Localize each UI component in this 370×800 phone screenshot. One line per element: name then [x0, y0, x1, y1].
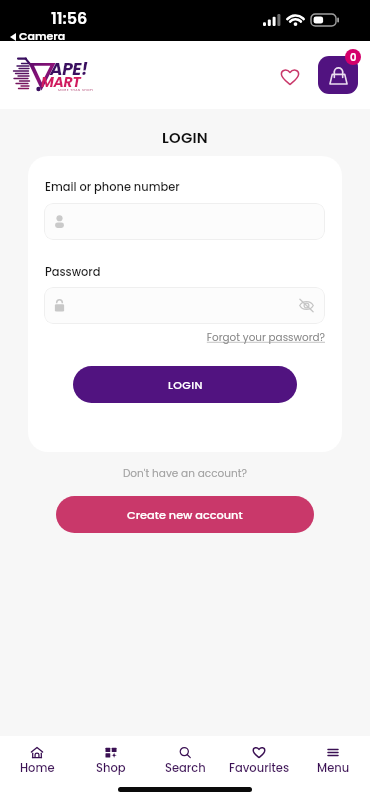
staticText: 0: [350, 50, 357, 64]
button[interactable]: LOGIN: [73, 366, 297, 403]
staticText: LOGIN: [168, 377, 203, 392]
button[interactable]: Home: [0, 747, 74, 776]
button[interactable]: Shop: [74, 747, 148, 776]
staticText: Email or phone number: [45, 179, 180, 195]
staticText: Camera: [19, 28, 66, 43]
staticText: Password: [45, 264, 101, 280]
button[interactable]: Favourites: [278, 65, 301, 88]
staticText: LOGIN: [0, 127, 370, 148]
staticText: Menu: [317, 760, 350, 776]
staticText: MART: [41, 72, 81, 92]
button[interactable]: Menu: [296, 747, 370, 776]
staticText: Forgot your password?: [28, 330, 325, 345]
staticText: 11:56: [51, 7, 88, 29]
staticText: APE!: [50, 57, 88, 81]
button[interactable]: [44, 287, 325, 324]
button[interactable]: Favourites: [222, 747, 296, 776]
button[interactable]: Search: [148, 747, 222, 776]
button[interactable]: [44, 203, 325, 240]
staticText: Home: [20, 760, 55, 776]
staticText: Search: [165, 760, 206, 776]
staticText: Create new account: [127, 507, 243, 523]
staticText: Shop: [96, 760, 126, 776]
staticText: MORE THAN SHOP!: [58, 88, 94, 93]
button[interactable]: Cart: [318, 56, 358, 94]
button[interactable]: Forgot your password?: [28, 330, 325, 345]
staticText: Favourites: [229, 760, 290, 776]
staticText: Don't have an account?: [0, 466, 370, 481]
button[interactable]: Create new account: [56, 496, 314, 533]
